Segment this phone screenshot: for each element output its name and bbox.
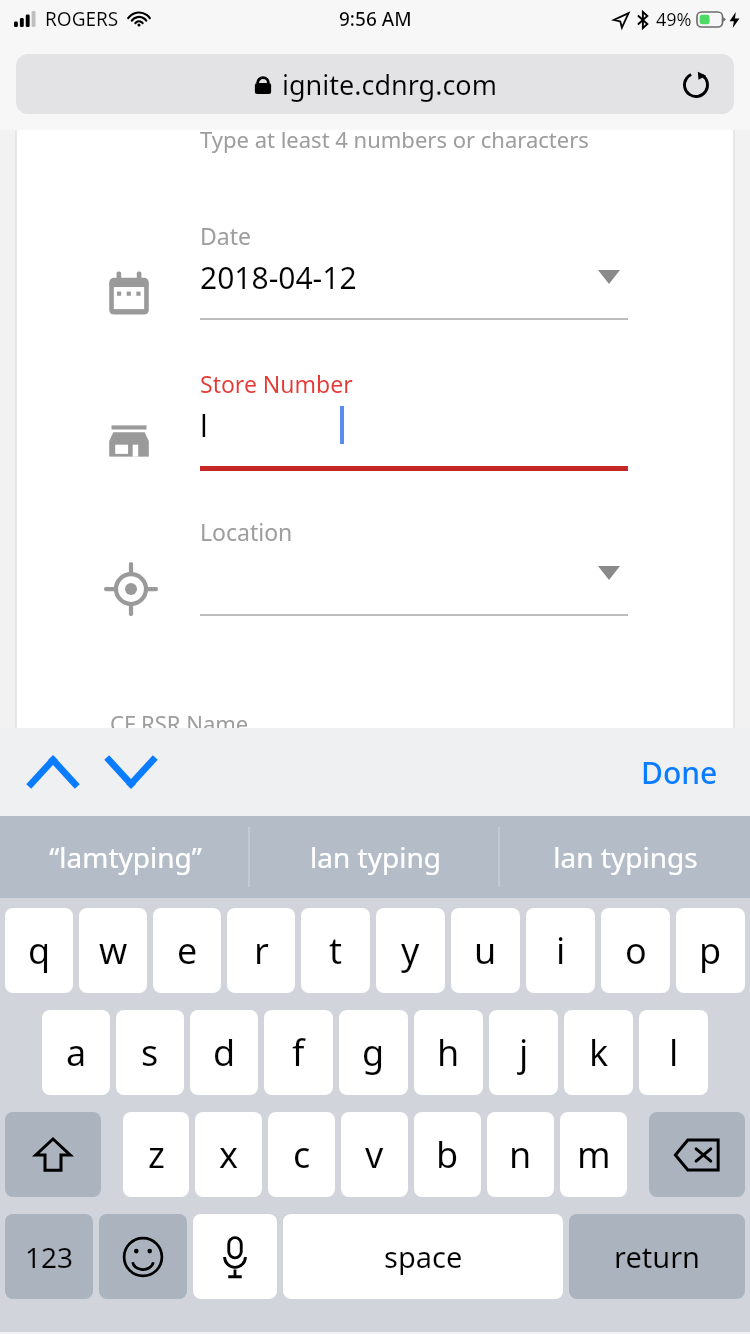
button[interactable]: space	[283, 1214, 563, 1299]
button[interactable]: g	[339, 1010, 408, 1095]
button[interactable]: return	[569, 1214, 745, 1299]
staticText: j	[519, 1028, 529, 1077]
staticText: d	[213, 1028, 236, 1077]
staticText: v	[365, 1130, 384, 1179]
staticText: l	[200, 405, 208, 446]
staticText: n	[509, 1130, 532, 1179]
button[interactable]: k	[564, 1010, 633, 1095]
staticText: s	[141, 1028, 159, 1077]
staticText: u	[474, 926, 497, 975]
staticText: Location	[200, 516, 293, 547]
staticText: f	[292, 1028, 305, 1077]
button[interactable]: i	[526, 908, 595, 993]
staticText: a	[66, 1028, 87, 1077]
staticText: e	[177, 926, 198, 975]
staticText: p	[699, 926, 722, 975]
button[interactable]: x	[195, 1112, 262, 1197]
staticText: Store Number	[200, 368, 353, 399]
button[interactable]: Backspace	[649, 1112, 745, 1197]
staticText: y	[401, 926, 420, 975]
staticText: 49%	[656, 7, 692, 32]
staticText: lan typings	[553, 838, 698, 876]
staticText: q	[28, 926, 51, 975]
button[interactable]: t	[301, 908, 370, 993]
staticText: m	[577, 1130, 611, 1179]
button[interactable]: Reload	[672, 60, 720, 108]
button[interactable]: Emoji	[99, 1214, 187, 1299]
button[interactable]: z	[123, 1112, 189, 1197]
button[interactable]: l	[639, 1010, 708, 1095]
staticText: Done	[641, 752, 718, 793]
staticText: g	[362, 1028, 385, 1077]
staticText: return	[614, 1237, 701, 1276]
button[interactable]: y	[376, 908, 445, 993]
button[interactable]: p	[676, 908, 745, 993]
button[interactable]: 123	[5, 1214, 93, 1299]
button[interactable]: Next field	[100, 744, 162, 800]
button[interactable]: Shift	[5, 1112, 101, 1197]
staticText: ignite.cdnrg.com	[282, 66, 497, 103]
staticText: 123	[25, 1238, 74, 1276]
staticText: ROGERS	[45, 6, 119, 32]
staticText: Type at least 4 numbers or characters	[200, 124, 589, 154]
button[interactable]: b	[414, 1112, 481, 1197]
staticText: x	[219, 1130, 239, 1179]
staticText: c	[293, 1130, 311, 1179]
staticText: h	[437, 1028, 460, 1077]
button[interactable]: Done	[629, 744, 730, 801]
button[interactable]: Location	[16, 516, 734, 646]
button[interactable]: ignite.cdnrg.com	[16, 54, 734, 114]
staticText: “lamtyping”	[49, 838, 202, 876]
button[interactable]: m	[560, 1112, 627, 1197]
button[interactable]: Previous field	[22, 744, 84, 800]
staticText: o	[625, 926, 647, 975]
staticText: i	[556, 926, 566, 975]
button[interactable]: f	[264, 1010, 333, 1095]
button[interactable]: h	[414, 1010, 483, 1095]
button[interactable]: u	[451, 908, 520, 993]
button[interactable]: c	[268, 1112, 335, 1197]
staticText: lan typing	[310, 838, 441, 876]
button[interactable]: n	[487, 1112, 554, 1197]
button[interactable]: e	[153, 908, 221, 993]
button[interactable]: w	[79, 908, 147, 993]
staticText: w	[99, 926, 128, 975]
button[interactable]: s	[116, 1010, 184, 1095]
button[interactable]: d	[190, 1010, 258, 1095]
staticText: b	[436, 1130, 459, 1179]
button[interactable]: j	[489, 1010, 558, 1095]
staticText: l	[669, 1028, 679, 1077]
staticText: 2018-04-12	[200, 257, 357, 298]
staticText: r	[254, 926, 269, 975]
button[interactable]: Date	[16, 220, 734, 350]
button[interactable]: “lamtyping”	[0, 816, 250, 898]
staticText: k	[589, 1028, 609, 1077]
button[interactable]: lan typing	[250, 816, 500, 898]
staticText: z	[148, 1130, 165, 1179]
staticText: space	[384, 1237, 463, 1276]
button[interactable]: o	[601, 908, 670, 993]
staticText: CF RSR Name	[110, 708, 249, 738]
button[interactable]: a	[42, 1010, 110, 1095]
staticText: Date	[200, 220, 251, 251]
button[interactable]: v	[341, 1112, 408, 1197]
button[interactable]: r	[227, 908, 295, 993]
button[interactable]: Store Number	[16, 368, 734, 498]
button[interactable]: Dictation	[193, 1214, 277, 1299]
staticText: t	[329, 926, 342, 975]
button[interactable]: q	[5, 908, 73, 993]
button[interactable]: lan typings	[500, 816, 750, 898]
staticText: 9:56 AM	[339, 6, 412, 32]
